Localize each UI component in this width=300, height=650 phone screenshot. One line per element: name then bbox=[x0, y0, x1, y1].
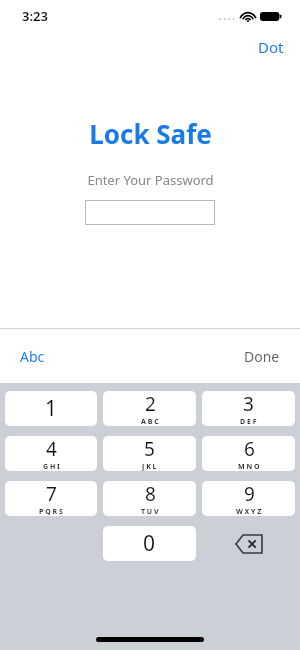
staticText: 3 bbox=[243, 391, 254, 417]
staticText: Abc bbox=[20, 347, 45, 366]
staticText: A B C bbox=[141, 417, 159, 426]
staticText: 6 bbox=[244, 436, 255, 462]
button[interactable]: 2 bbox=[103, 391, 196, 426]
button[interactable]: 0 bbox=[103, 526, 196, 561]
staticText: P Q R S bbox=[39, 507, 63, 516]
staticText: Done bbox=[244, 347, 280, 366]
button[interactable]: 9 bbox=[202, 481, 295, 516]
staticText: Enter Your Password bbox=[87, 171, 214, 189]
staticText: 4 bbox=[46, 436, 57, 462]
button[interactable]: 8 bbox=[103, 481, 196, 516]
staticText: 5 bbox=[144, 436, 155, 462]
staticText: G H I bbox=[43, 462, 60, 471]
button[interactable] bbox=[85, 200, 215, 225]
button[interactable]: Delete bbox=[202, 526, 295, 561]
staticText: Lock Safe bbox=[89, 116, 212, 151]
button[interactable]: 6 bbox=[202, 436, 295, 471]
staticText: 1 bbox=[45, 394, 58, 423]
staticText: J K L bbox=[142, 462, 157, 471]
staticText: 0 bbox=[143, 529, 156, 558]
staticText: 8 bbox=[145, 481, 156, 507]
staticText: M N O bbox=[238, 462, 260, 471]
button[interactable]: 4 bbox=[5, 436, 97, 471]
staticText: T U V bbox=[141, 507, 159, 516]
staticText: 9 bbox=[244, 481, 255, 507]
staticText: Dot bbox=[258, 37, 284, 57]
button[interactable]: 3 bbox=[202, 391, 295, 426]
button[interactable]: 1 bbox=[5, 391, 97, 426]
staticText: 3:23 bbox=[22, 7, 48, 25]
button[interactable]: 5 bbox=[103, 436, 196, 471]
button[interactable]: Dot bbox=[250, 34, 292, 60]
button[interactable]: 7 bbox=[5, 481, 97, 516]
button[interactable]: Abc bbox=[12, 343, 53, 370]
staticText: D E F bbox=[240, 417, 257, 426]
staticText: 2 bbox=[145, 391, 156, 417]
button[interactable]: Done bbox=[236, 343, 288, 370]
staticText: 7 bbox=[46, 481, 57, 507]
staticText: W X Y Z bbox=[236, 507, 262, 516]
